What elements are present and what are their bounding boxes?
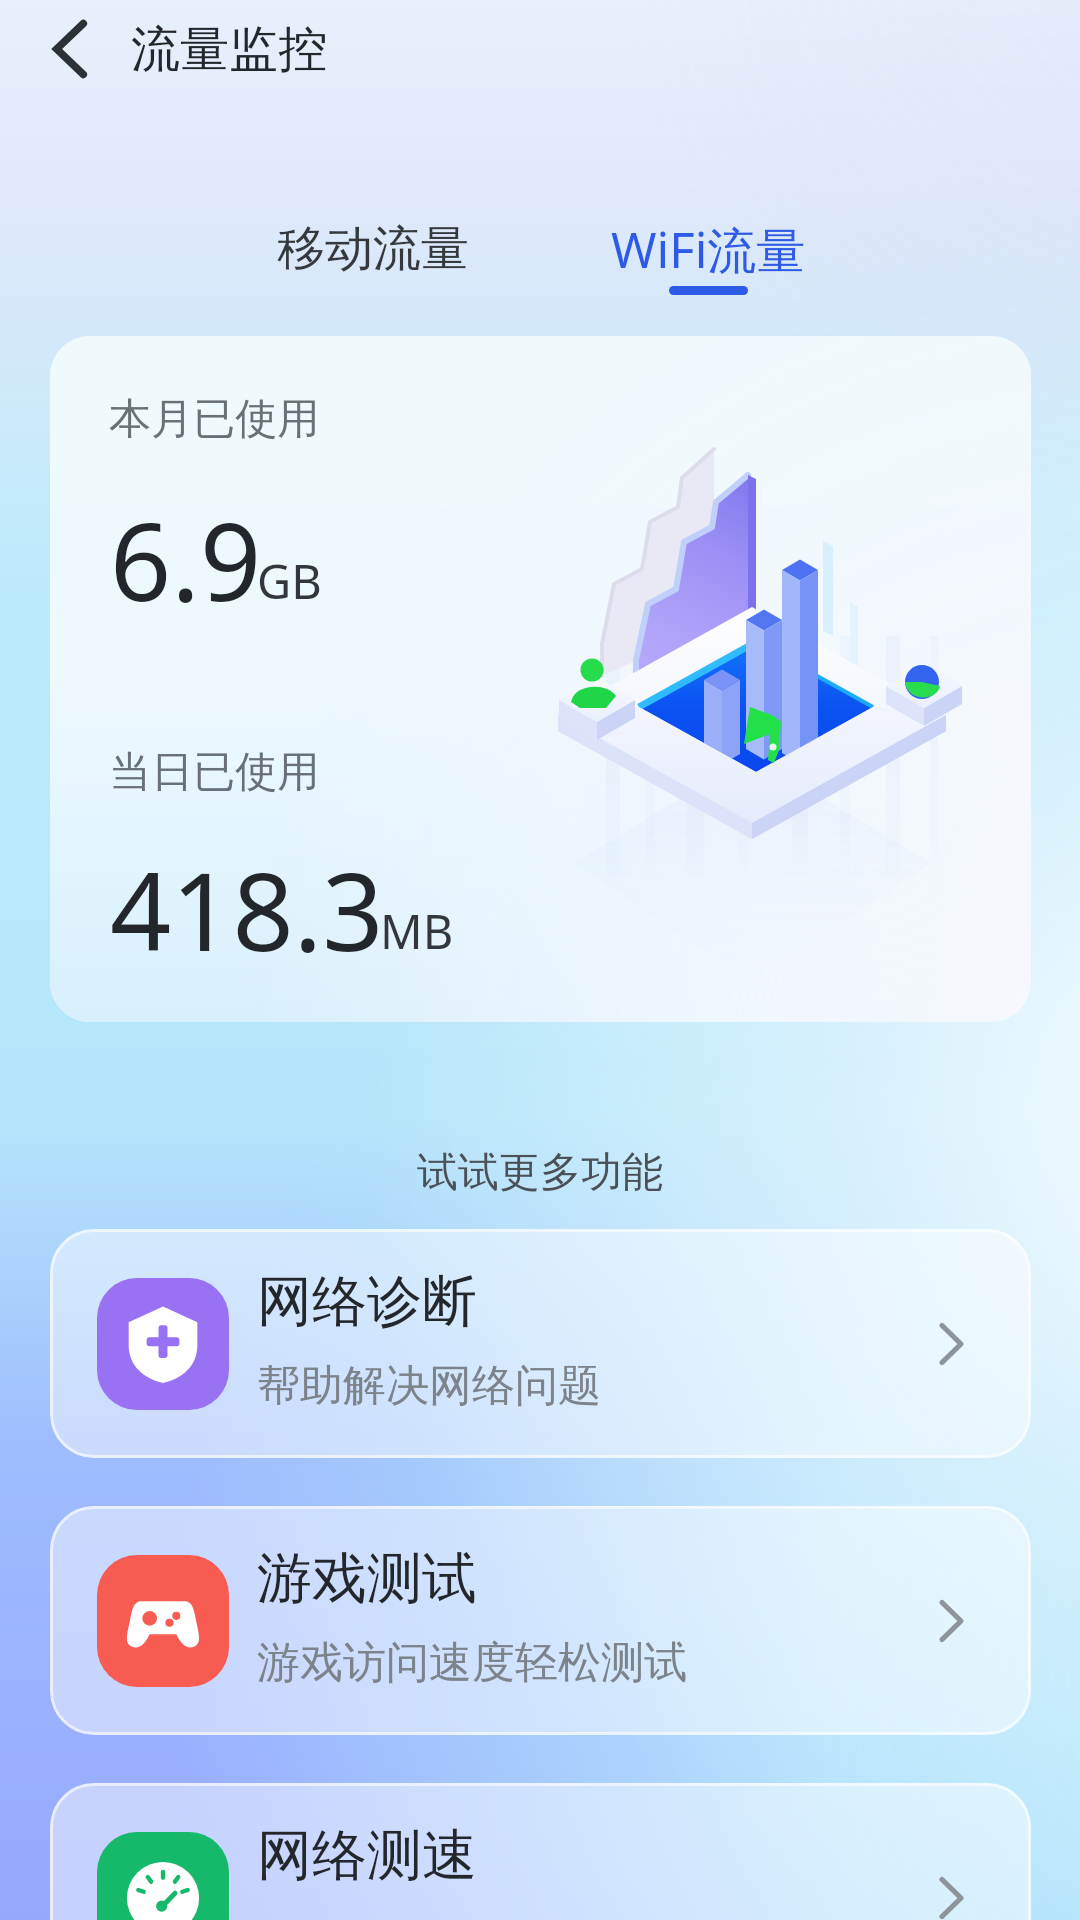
staticText: 流量监控 xyxy=(131,19,327,81)
staticText: 试试更多功能 xyxy=(0,1147,1080,1199)
staticText: 游戏访问速度轻松测试 xyxy=(257,1636,687,1690)
button[interactable]: 网络诊断 xyxy=(50,1229,1031,1458)
staticText: GB xyxy=(257,549,322,613)
staticText: 网络测速 xyxy=(257,1821,477,1890)
button[interactable]: 网络测速 xyxy=(50,1783,1031,1920)
staticText: MB xyxy=(380,899,454,963)
staticText: 418.3 xyxy=(110,837,384,983)
staticText: 帮助解决网络问题 xyxy=(257,1359,601,1413)
button[interactable]: 游戏测试 xyxy=(50,1506,1031,1735)
staticText: WiFi流量 xyxy=(611,216,806,283)
button[interactable]: 移动流量 xyxy=(257,211,489,287)
button[interactable]: WiFi流量 xyxy=(591,208,826,291)
staticText: 网络诊断 xyxy=(257,1267,477,1336)
staticText: 移动流量 xyxy=(277,219,469,279)
staticText: 本月已使用 xyxy=(109,393,319,446)
button[interactable]: Back xyxy=(29,8,111,90)
staticText: 游戏测试 xyxy=(257,1544,477,1613)
staticText: 6.9 xyxy=(110,487,262,633)
staticText: 当日已使用 xyxy=(109,746,319,799)
